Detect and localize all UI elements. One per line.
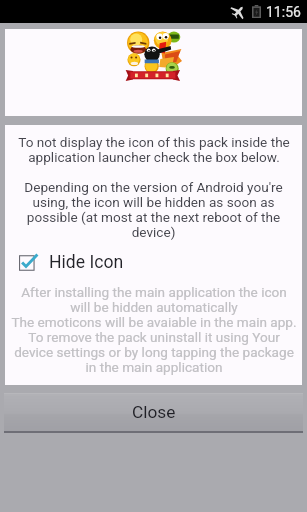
staticText: Depending on the version of Android you'… — [24, 179, 283, 240]
other: Hide Icon checkbox — [19, 252, 39, 273]
staticText: 11:56 — [266, 4, 301, 20]
staticText: After installing the main application th… — [11, 284, 297, 375]
button[interactable]: Close — [4, 393, 303, 433]
other: Battery — [252, 5, 261, 18]
staticText: Hide Icon — [49, 252, 124, 273]
button[interactable]: Hide Icon checkbox — [5, 251, 302, 273]
other: Airplane mode — [230, 5, 247, 18]
staticText: To not display the icon of this pack ins… — [18, 134, 290, 165]
staticText: Close — [132, 402, 176, 422]
